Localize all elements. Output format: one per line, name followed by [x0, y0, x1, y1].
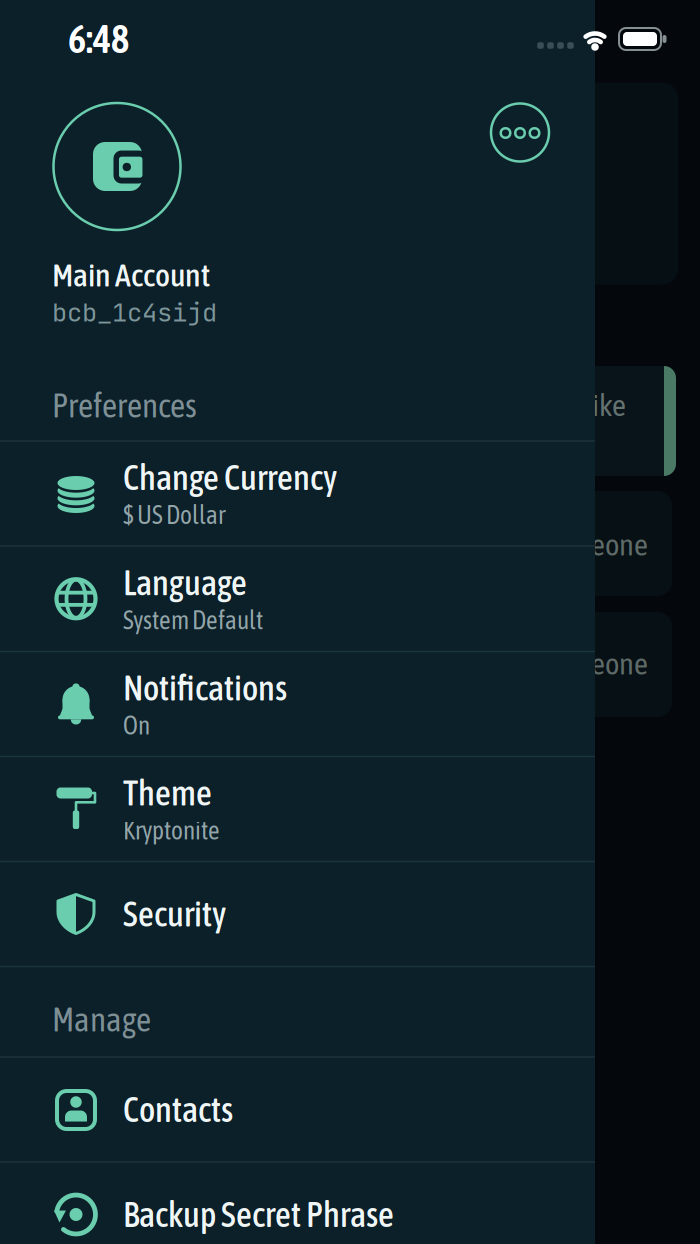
button[interactable]: Change Currency: [0, 441, 595, 545]
staticText: On: [123, 711, 150, 740]
staticText: Manage: [52, 1000, 151, 1039]
button[interactable]: More options: [489, 101, 551, 163]
staticText: Notifications: [123, 668, 287, 708]
button[interactable]: Theme: [0, 757, 595, 861]
staticText: Backup Secret Phrase: [123, 1195, 394, 1234]
staticText: Theme: [123, 773, 212, 813]
staticText: 6:48: [68, 17, 129, 61]
button[interactable]: Notifications: [0, 652, 595, 756]
staticText: Kryptonite: [123, 816, 220, 845]
staticText: Change Currency: [123, 458, 337, 497]
staticText: System Default: [123, 606, 263, 635]
staticText: Preferences: [52, 386, 197, 425]
staticText: bcb_1c4sijd: [52, 296, 217, 329]
button[interactable]: Security: [0, 862, 595, 966]
staticText: Main Account: [52, 257, 210, 293]
staticText: eone: [591, 527, 648, 562]
button[interactable]: Account: [51, 100, 183, 232]
staticText: ike: [592, 387, 626, 422]
staticText: $ US Dollar: [123, 500, 225, 529]
button[interactable]: Language: [0, 547, 595, 651]
button[interactable]: Contacts: [0, 1057, 595, 1161]
staticText: Contacts: [123, 1090, 233, 1129]
button[interactable]: Backup Secret Phrase: [0, 1162, 595, 1244]
staticText: Language: [123, 563, 247, 603]
staticText: eone: [591, 646, 648, 681]
staticText: Security: [123, 894, 226, 934]
